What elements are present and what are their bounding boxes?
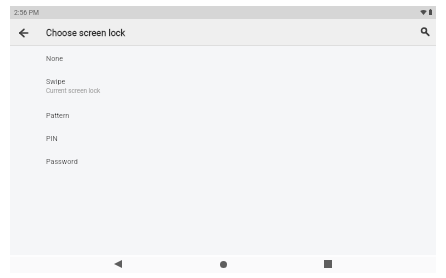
staticText: Swipe [46,77,66,85]
button[interactable]: Swipe [10,73,436,106]
staticText: None [46,54,64,62]
staticText: Choose screen lock [46,28,126,39]
button[interactable]: PIN [10,130,436,153]
button[interactable]: Navigate up [12,22,34,44]
button[interactable]: Password [10,153,436,176]
staticText: Pattern [46,111,70,119]
button[interactable]: Back [92,255,144,273]
staticText: Current screen lock [46,87,101,94]
staticText: Password [46,157,78,165]
staticText: PIN [46,134,58,142]
button[interactable]: Recent apps [302,255,354,273]
staticText: 2:56 PM [14,9,40,17]
button[interactable]: None [10,50,436,73]
button[interactable]: Pattern [10,107,436,130]
button[interactable]: Search [414,21,436,43]
button[interactable]: Home [197,255,249,273]
